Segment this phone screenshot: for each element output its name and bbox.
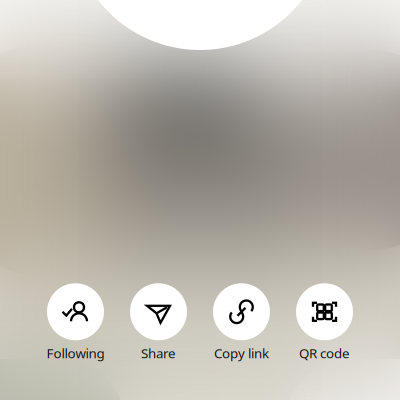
- button[interactable]: Following: [34, 283, 117, 362]
- button[interactable]: Share: [117, 283, 200, 362]
- staticText: Copy link: [214, 344, 269, 362]
- button[interactable]: Copy link: [200, 283, 283, 362]
- staticText: Share: [141, 344, 176, 362]
- button[interactable]: QR code: [283, 283, 366, 362]
- staticText: QR code: [299, 344, 350, 362]
- staticText: Following: [46, 344, 104, 362]
